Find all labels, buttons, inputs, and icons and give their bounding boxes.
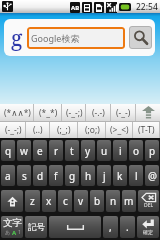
- staticText: r: [54, 144, 59, 158]
- staticText: p: [149, 144, 156, 158]
- button[interactable]: u: [97, 140, 111, 161]
- button[interactable]: (T-T): [133, 122, 160, 138]
- staticText: 記号: [28, 222, 45, 233]
- staticText: .: [126, 220, 129, 234]
- staticText: l: [135, 169, 138, 183]
- staticText: e: [37, 144, 43, 158]
- button[interactable]: Enter: [137, 216, 159, 238]
- button[interactable]: o: [129, 140, 143, 161]
- button[interactable]: g: [65, 165, 79, 186]
- staticText: u: [101, 144, 108, 158]
- button[interactable]: k: [113, 165, 127, 186]
- button[interactable]: 文字: [1, 216, 23, 238]
- staticText: h: [85, 169, 92, 183]
- button[interactable]: c: [58, 190, 72, 212]
- staticText: (>_<): [110, 124, 129, 136]
- button[interactable]: Delete: [138, 190, 159, 212]
- staticText: n: [110, 194, 117, 208]
- button[interactable]: a: [1, 165, 15, 186]
- staticText: (*_*): [39, 107, 58, 119]
- staticText: 文字: [3, 217, 22, 229]
- button[interactable]: e: [33, 140, 47, 161]
- staticText: (T-T): [138, 124, 155, 136]
- staticText: A: [12, 229, 17, 237]
- staticText: d: [37, 169, 44, 183]
- staticText: q: [5, 144, 12, 158]
- button[interactable]: b: [90, 190, 104, 212]
- staticText: b: [94, 194, 101, 208]
- staticText: y: [85, 144, 91, 158]
- button[interactable]: m: [122, 190, 136, 212]
- staticText: (*∧∧*): [4, 107, 31, 119]
- button[interactable]: Space: [49, 216, 101, 238]
- staticText: t: [70, 144, 74, 158]
- staticText: v: [78, 194, 84, 208]
- button[interactable]: j: [97, 165, 111, 186]
- button[interactable]: n: [106, 190, 120, 212]
- button[interactable]: (;o;): [78, 122, 106, 138]
- button[interactable]: (-_-;): [62, 104, 86, 121]
- button[interactable]: y: [81, 140, 95, 161]
- staticText: (-_-;): [66, 107, 83, 119]
- staticText: あ: [5, 229, 11, 235]
- staticText: (-_-;): [5, 124, 22, 136]
- staticText: g: [69, 169, 76, 183]
- staticText: 確定: [143, 229, 153, 235]
- staticText: AB: [71, 4, 80, 12]
- staticText: 1: [18, 229, 21, 236]
- button[interactable]: @: [145, 165, 159, 186]
- button[interactable]: x: [42, 190, 56, 212]
- staticText: a: [5, 169, 11, 183]
- button[interactable]: 記号: [25, 216, 47, 238]
- staticText: (-.-): [92, 107, 105, 119]
- staticText: j: [103, 169, 106, 183]
- button[interactable]: Google検索: [27, 27, 125, 49]
- button[interactable]: More candidates: [136, 104, 160, 121]
- button[interactable]: r: [49, 140, 63, 161]
- button[interactable]: f: [49, 165, 63, 186]
- staticText: Google検索: [31, 32, 80, 44]
- staticText: 22:54: [136, 1, 158, 13]
- staticText: o: [133, 144, 140, 158]
- button[interactable]: d: [33, 165, 47, 186]
- staticText: g: [11, 24, 23, 53]
- button[interactable]: z: [25, 190, 40, 212]
- button[interactable]: Search: [129, 26, 152, 49]
- staticText: (;o;): [85, 124, 100, 136]
- staticText: (..): [33, 124, 43, 136]
- staticText: z: [30, 194, 35, 208]
- staticText: f: [54, 169, 58, 183]
- button[interactable]: (*_*): [34, 104, 62, 121]
- button[interactable]: .: [120, 216, 135, 238]
- button[interactable]: (-_-): [111, 104, 136, 121]
- button[interactable]: (*∧∧*): [0, 104, 34, 121]
- button[interactable]: h: [81, 165, 95, 186]
- button[interactable]: s: [17, 165, 31, 186]
- button[interactable]: w: [17, 140, 31, 161]
- staticText: c: [63, 194, 68, 208]
- button[interactable]: ,: [103, 216, 118, 238]
- button[interactable]: (>_<): [106, 122, 133, 138]
- staticText: w: [20, 144, 28, 158]
- staticText: m: [124, 194, 134, 208]
- button[interactable]: (;_;): [50, 122, 78, 138]
- staticText: ,: [109, 220, 112, 234]
- staticText: x: [46, 194, 52, 208]
- button[interactable]: (..): [26, 122, 50, 138]
- button[interactable]: p: [145, 140, 159, 161]
- staticText: k: [117, 169, 123, 183]
- button[interactable]: (-.-): [86, 104, 111, 121]
- staticText: (;_;): [57, 124, 71, 136]
- button[interactable]: i: [113, 140, 127, 161]
- button[interactable]: q: [1, 140, 15, 161]
- staticText: s: [22, 169, 27, 183]
- button[interactable]: t: [65, 140, 79, 161]
- staticText: (-_-): [116, 107, 131, 119]
- button[interactable]: (-_-;): [0, 122, 26, 138]
- staticText: DEL: [144, 202, 154, 209]
- button[interactable]: v: [74, 190, 88, 212]
- button[interactable]: Shift: [1, 190, 23, 212]
- staticText: @: [148, 169, 157, 183]
- button[interactable]: l: [129, 165, 143, 186]
- staticText: i: [119, 144, 122, 158]
